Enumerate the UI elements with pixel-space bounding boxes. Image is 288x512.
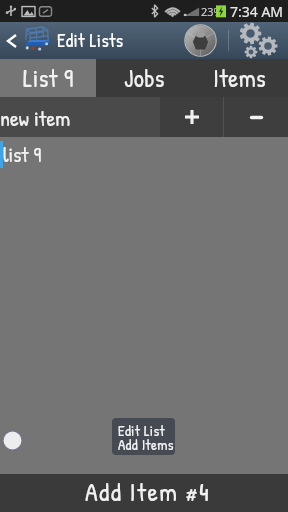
button[interactable]: Edit List xyxy=(112,418,175,455)
button[interactable]: Add Item #4 xyxy=(0,474,288,512)
staticText: Add Items xyxy=(118,434,174,451)
staticText: Items xyxy=(213,61,267,95)
button[interactable]: Items xyxy=(192,59,288,97)
button[interactable]: list 9 xyxy=(0,141,288,168)
staticText: 7:34 AM xyxy=(230,2,284,21)
button[interactable]: Jobs xyxy=(96,59,192,97)
staticText: Add Item #4 xyxy=(85,474,211,509)
button[interactable]: Remove xyxy=(224,97,288,137)
staticText: List 9 xyxy=(23,61,74,95)
button[interactable]: Back xyxy=(0,22,22,59)
button[interactable]: Account xyxy=(184,24,217,57)
staticText: new item xyxy=(0,103,71,133)
staticText: 23% xyxy=(201,4,223,19)
button[interactable]: Select item xyxy=(2,430,23,451)
staticText: list 9 xyxy=(3,140,42,167)
staticText: Jobs xyxy=(124,61,165,95)
button[interactable]: List 9 xyxy=(0,59,96,97)
button[interactable]: Settings xyxy=(238,42,288,79)
staticText: Edit Lists xyxy=(57,27,124,53)
staticText: Edit List xyxy=(118,420,166,440)
button[interactable]: Add xyxy=(160,97,223,137)
